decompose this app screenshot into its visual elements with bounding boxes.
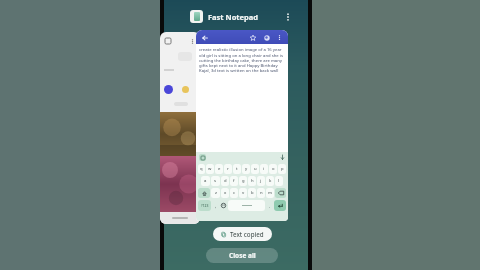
staticText: s xyxy=(214,178,217,184)
button[interactable]: y xyxy=(242,164,250,174)
staticText: t xyxy=(236,166,238,172)
button[interactable]: v xyxy=(239,188,247,198)
staticText: f xyxy=(233,178,235,184)
staticText: . xyxy=(269,203,271,209)
staticText: e xyxy=(218,166,221,172)
button[interactable]: Back xyxy=(196,30,288,221)
staticText: create realistic illusion image of a 16 … xyxy=(199,47,285,73)
staticText: i xyxy=(263,166,265,172)
staticText: u xyxy=(254,166,257,172)
button[interactable]: Back xyxy=(200,33,209,42)
button[interactable]: x xyxy=(221,188,229,198)
staticText: Fast Notepad xyxy=(208,12,259,22)
staticText: y xyxy=(245,166,248,172)
staticText: l xyxy=(278,178,280,184)
button[interactable] xyxy=(275,188,286,198)
staticText: c xyxy=(233,190,236,196)
button[interactable]: i xyxy=(260,164,268,174)
button[interactable]: e xyxy=(215,164,223,174)
button[interactable]: More options xyxy=(282,11,294,23)
button[interactable]: r xyxy=(224,164,232,174)
button[interactable]: z xyxy=(211,188,220,198)
staticText: n xyxy=(260,190,263,196)
button[interactable]: k xyxy=(266,176,274,186)
button[interactable]: Fast Notepad xyxy=(190,10,294,23)
button[interactable]: Theme xyxy=(262,33,271,42)
button[interactable]: o xyxy=(269,164,277,174)
staticText: b xyxy=(251,190,254,196)
staticText: j xyxy=(260,178,262,184)
button[interactable]: More xyxy=(275,33,284,42)
staticText: m xyxy=(268,190,272,196)
staticText: h xyxy=(251,178,254,184)
button[interactable] xyxy=(198,188,210,198)
button[interactable]: Text copied xyxy=(221,227,264,241)
button[interactable]: Space xyxy=(228,200,265,211)
staticText: q xyxy=(200,166,203,172)
staticText: Text copied xyxy=(230,230,264,238)
button[interactable]: n xyxy=(257,188,265,198)
staticText: v xyxy=(242,190,245,196)
button[interactable]: ?123 xyxy=(198,200,211,211)
staticText: w xyxy=(208,166,212,172)
button[interactable] xyxy=(160,32,200,224)
button[interactable]: b xyxy=(248,188,256,198)
button[interactable]: Close all xyxy=(206,248,278,263)
button[interactable]: u xyxy=(251,164,259,174)
button[interactable]: . xyxy=(266,200,273,211)
staticText: k xyxy=(269,178,272,184)
button[interactable]: , xyxy=(212,200,219,211)
button[interactable]: q xyxy=(198,164,205,174)
button[interactable]: w xyxy=(206,164,214,174)
staticText: ?123 xyxy=(201,203,209,208)
button[interactable]: a xyxy=(201,176,210,186)
staticText: x xyxy=(224,190,227,196)
staticText: o xyxy=(272,166,275,172)
button[interactable]: l xyxy=(275,176,283,186)
button[interactable]: d xyxy=(221,176,229,186)
button[interactable]: p xyxy=(278,164,286,174)
button[interactable]: j xyxy=(257,176,265,186)
staticText: d xyxy=(224,178,227,184)
button[interactable]: create realistic illusion image of a 16 … xyxy=(199,47,285,152)
staticText: Close all xyxy=(229,251,256,260)
button[interactable]: Emoji xyxy=(220,200,227,211)
staticText: r xyxy=(227,166,229,172)
button[interactable]: Favorite xyxy=(248,33,257,42)
staticText: a xyxy=(204,178,207,184)
staticText: , xyxy=(215,203,217,209)
button[interactable]: f xyxy=(230,176,238,186)
button[interactable]: t xyxy=(233,164,241,174)
staticText: g xyxy=(242,178,245,184)
button[interactable]: g xyxy=(239,176,247,186)
button[interactable]: h xyxy=(248,176,256,186)
button[interactable]: s xyxy=(211,176,220,186)
staticText: p xyxy=(281,166,284,172)
button[interactable]: Enter xyxy=(274,200,286,211)
button[interactable]: m xyxy=(266,188,274,198)
button[interactable]: c xyxy=(230,188,238,198)
staticText: z xyxy=(215,190,217,196)
